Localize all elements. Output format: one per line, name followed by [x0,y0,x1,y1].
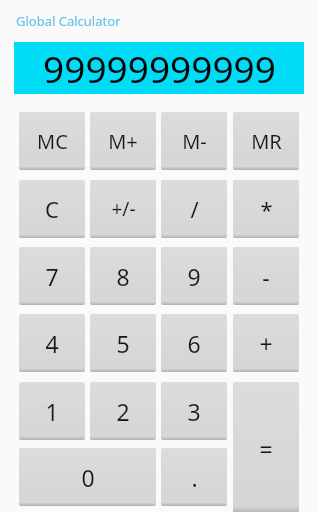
button[interactable]: = [233,382,299,512]
button[interactable]: 7 [19,247,85,305]
button[interactable]: / [161,180,227,238]
button[interactable]: 2 [90,382,156,440]
button[interactable]: 0 [19,448,156,506]
staticText: . [191,462,198,493]
button[interactable]: MC [19,112,85,170]
staticText: / [190,194,199,224]
staticText: 5 [116,328,130,359]
staticText: 7 [45,261,59,292]
staticText: C [45,194,59,224]
button[interactable]: 8 [90,247,156,305]
button[interactable]: + [233,314,299,372]
staticText: 99999999999 [43,43,276,93]
staticText: 9 [187,261,201,292]
button[interactable]: C [19,180,85,238]
button[interactable]: M- [161,112,227,170]
staticText: 0 [81,462,95,493]
button[interactable]: M+ [90,112,156,170]
button[interactable]: 1 [19,382,85,440]
staticText: = [259,433,273,464]
button[interactable]: 6 [161,314,227,372]
button[interactable]: 99999999999 [14,42,304,94]
button[interactable]: MR [233,112,299,170]
staticText: 1 [45,396,59,427]
staticText: +/- [111,196,136,222]
staticText: + [259,328,273,359]
staticText: 2 [116,396,130,427]
staticText: 3 [187,396,201,427]
button[interactable]: 4 [19,314,85,372]
button[interactable]: +/- [90,180,156,238]
button[interactable]: - [233,247,299,305]
staticText: MC [37,128,68,155]
staticText: 6 [187,328,201,359]
staticText: M- [182,128,207,155]
staticText: Global Calculator [16,12,121,30]
staticText: 4 [45,328,59,359]
staticText: MR [251,128,282,155]
button[interactable]: 9 [161,247,227,305]
staticText: M+ [108,128,138,155]
staticText: 8 [116,261,130,292]
button[interactable]: . [161,448,227,506]
staticText: - [262,261,270,292]
button[interactable]: 5 [90,314,156,372]
button[interactable]: 3 [161,382,227,440]
button[interactable]: * [233,180,299,238]
staticText: * [260,194,273,224]
